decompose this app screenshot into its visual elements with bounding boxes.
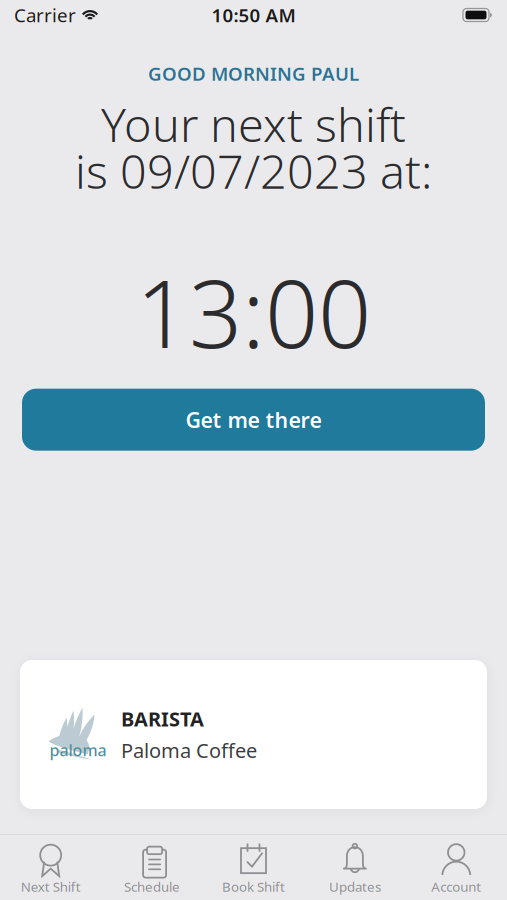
staticText: Paloma Coffee	[121, 737, 257, 764]
staticText: Updates	[329, 878, 381, 895]
button[interactable]: Get me there	[22, 389, 485, 451]
staticText: is 09/07/2023 at:	[75, 140, 432, 202]
staticText: Schedule	[124, 878, 180, 895]
staticText: Get me there	[185, 405, 321, 434]
button[interactable]: Updates	[304, 835, 406, 900]
button[interactable]: Next Shift	[0, 835, 101, 900]
staticText: Carrier	[14, 3, 76, 27]
staticText: Next Shift	[21, 878, 81, 895]
button[interactable]: Schedule	[101, 835, 203, 900]
staticText: paloma	[49, 739, 106, 761]
staticText: 10:50 AM	[211, 3, 295, 27]
button[interactable]: Barista at Paloma Coffee	[20, 660, 487, 809]
staticText: Your next shift	[101, 93, 406, 155]
staticText: Account	[431, 878, 481, 895]
staticText: Book Shift	[222, 878, 285, 895]
staticText: BARISTA	[121, 705, 204, 732]
staticText: GOOD MORNING PAUL	[148, 61, 359, 86]
button[interactable]: Book Shift	[203, 835, 304, 900]
button[interactable]: Account	[406, 835, 507, 900]
staticText: 13:00	[136, 250, 371, 374]
